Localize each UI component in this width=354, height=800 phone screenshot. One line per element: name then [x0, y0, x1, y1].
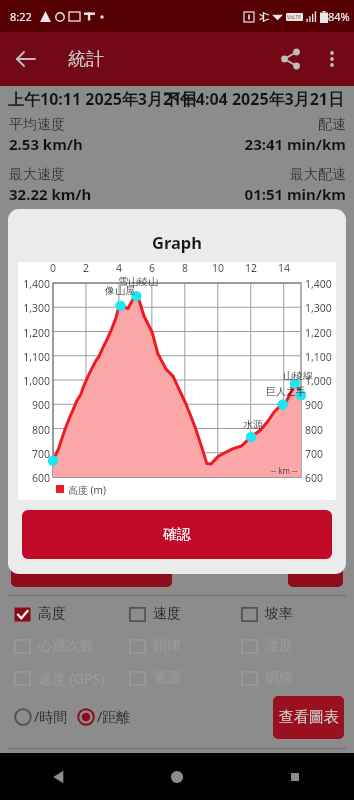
button[interactable]: 確認 [22, 510, 332, 559]
staticText: 2.53 km/h [9, 134, 83, 154]
staticText: 網絡 [265, 669, 293, 687]
staticText: 統計 [68, 48, 104, 71]
staticText: -- km -- [271, 465, 298, 476]
staticText: 800 [18, 423, 50, 437]
staticText: 32.22 km/h [9, 184, 92, 204]
staticText: 1,300 [305, 301, 332, 315]
staticText: 韻律 [153, 637, 181, 655]
staticText: 8:22 [10, 9, 32, 24]
staticText: 像山屋 [105, 284, 135, 297]
staticText: 速度 [153, 605, 181, 623]
staticText: 1,100 [18, 350, 50, 364]
staticText: 最大配速 [150, 166, 346, 184]
button[interactable] [11, 556, 172, 587]
staticText: 2 [74, 261, 98, 275]
staticText: 900 [18, 398, 50, 412]
staticText: 600 [305, 471, 324, 485]
staticText: 溫度 [265, 637, 293, 655]
staticText: 1,000 [18, 374, 50, 388]
staticText: 10 [206, 261, 230, 275]
staticText: 心跳次數 [38, 637, 94, 655]
button[interactable]: 網絡 [241, 669, 293, 687]
button[interactable]: Recent apps [236, 753, 354, 800]
button[interactable]: 電源 [129, 669, 181, 687]
staticText: 高度 (m) [68, 483, 106, 497]
staticText: 600 [18, 471, 50, 485]
button[interactable]: Back [9, 42, 43, 76]
staticText: 山稜線 [283, 369, 313, 382]
staticText: 700 [18, 447, 50, 461]
staticText: 8 [173, 261, 197, 275]
staticText: 6 [140, 261, 164, 275]
staticText: 平均速度 [9, 116, 65, 134]
button[interactable]: Home [118, 753, 236, 800]
staticText: 水源 [243, 418, 263, 431]
button[interactable]: More options [315, 42, 349, 76]
staticText: 下午4:04 2025年3月21日 [157, 88, 344, 110]
staticText: 84% [328, 9, 350, 24]
staticText: 坡率 [265, 605, 293, 623]
staticText: 最大速度 [9, 166, 65, 184]
staticText: 4 [107, 261, 131, 275]
staticText: 高度 [38, 605, 66, 623]
button[interactable]: /距離 [77, 707, 131, 726]
button[interactable]: 高度 [14, 605, 66, 623]
staticText: 1,400 [305, 277, 332, 291]
staticText: 0 [41, 261, 65, 275]
staticText: 巨人之手 [266, 385, 306, 398]
staticText: 23:41 min/km [150, 134, 346, 154]
staticText: /距離 [97, 707, 131, 726]
staticText: 1,000 [305, 374, 332, 388]
staticText: 900 [305, 398, 324, 412]
staticText: 1,400 [18, 277, 50, 291]
button[interactable]: /時間 [14, 707, 68, 726]
staticText: 700 [305, 447, 324, 461]
staticText: 上午10:11 2025年3月21日 [8, 88, 198, 110]
button[interactable] [288, 556, 343, 587]
staticText: VoLTE [287, 14, 302, 21]
staticText: 1,300 [18, 301, 50, 315]
staticText: /時間 [34, 707, 68, 726]
staticText: 1,100 [305, 350, 332, 364]
staticText: 14 [272, 261, 296, 275]
staticText: 雪山稜山 [118, 275, 158, 288]
staticText: 配速 [150, 116, 346, 134]
staticText: 1,200 [305, 326, 332, 340]
staticText: 1,200 [18, 326, 50, 340]
staticText: 01:51 min/km [150, 184, 346, 204]
staticText: 800 [305, 423, 324, 437]
staticText: 速度 (GPS) [38, 669, 105, 688]
button[interactable]: Share [274, 42, 308, 76]
button[interactable]: 速度 [129, 605, 181, 623]
staticText: 查看圖表 [279, 708, 339, 727]
staticText: 電源 [153, 669, 181, 687]
button[interactable]: 速度 (GPS) [14, 669, 105, 688]
staticText: Graph [8, 231, 346, 253]
button[interactable]: 坡率 [241, 605, 293, 623]
button[interactable]: 心跳次數 [14, 637, 94, 655]
button[interactable]: 韻律 [129, 637, 181, 655]
staticText: 確認 [163, 526, 191, 544]
staticText: 12 [239, 261, 263, 275]
button[interactable]: 溫度 [241, 637, 293, 655]
button[interactable]: 查看圖表 [273, 696, 344, 739]
button[interactable]: Back [0, 753, 118, 800]
